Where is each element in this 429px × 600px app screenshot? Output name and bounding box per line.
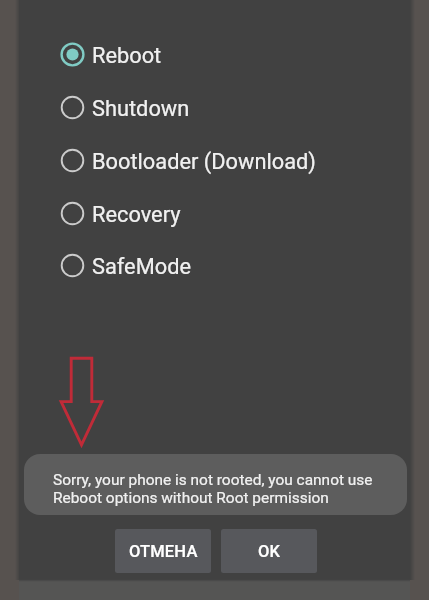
staticText: Bootloader (Download) bbox=[92, 149, 316, 175]
staticText: Recovery bbox=[92, 202, 181, 228]
toggle[interactable]: Recovery bbox=[19, 187, 410, 239]
staticText: Reboot bbox=[92, 43, 162, 69]
button[interactable]: OK bbox=[221, 529, 317, 573]
staticText: Sorry, your phone is not rooted, you can… bbox=[53, 471, 373, 507]
toggle[interactable]: Bootloader (Download) bbox=[19, 134, 410, 186]
staticText: OK bbox=[258, 542, 281, 561]
button[interactable]: ОТМЕНА bbox=[115, 529, 211, 573]
staticText: ОТМЕНА bbox=[129, 542, 198, 561]
staticText: Shutdown bbox=[92, 96, 190, 122]
toggle[interactable]: Shutdown bbox=[19, 81, 410, 133]
toggle[interactable]: Reboot bbox=[19, 28, 410, 80]
toggle[interactable]: SafeMode bbox=[19, 239, 410, 291]
staticText: SafeMode bbox=[92, 254, 191, 280]
